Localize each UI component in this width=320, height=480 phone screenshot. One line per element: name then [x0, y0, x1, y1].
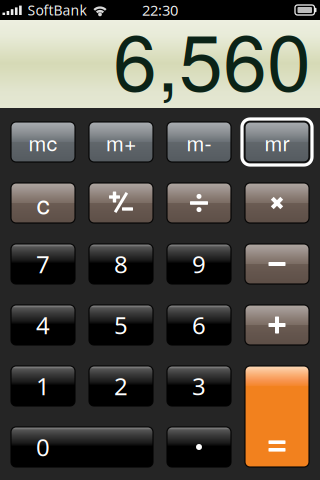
staticText: 6,560: [113, 1, 311, 114]
button[interactable]: 5: [89, 305, 153, 345]
button[interactable]: 4: [11, 305, 75, 345]
button[interactable]: 7: [11, 244, 75, 284]
button[interactable]: divide: [167, 183, 231, 223]
staticText: 4: [36, 309, 50, 341]
button[interactable]: memory add: [89, 122, 153, 162]
staticText: m+: [106, 127, 136, 157]
button[interactable]: equals: [245, 366, 309, 467]
button[interactable]: memory recall: [245, 122, 309, 162]
staticText: 9: [192, 248, 206, 280]
button[interactable]: 8: [89, 244, 153, 284]
button[interactable]: 3: [167, 366, 231, 406]
button[interactable]: clear: [11, 183, 75, 223]
staticText: 2: [114, 370, 128, 402]
staticText: 7: [36, 248, 50, 280]
staticText: mr: [264, 127, 289, 157]
button[interactable]: 0: [11, 427, 153, 467]
button[interactable]: plus: [245, 305, 309, 345]
staticText: 22:30: [142, 0, 178, 20]
staticText: 6: [192, 309, 206, 341]
button[interactable]: memory subtract: [167, 122, 231, 162]
staticText: 3: [192, 370, 206, 402]
button[interactable]: 2: [89, 366, 153, 406]
button[interactable]: 9: [167, 244, 231, 284]
button[interactable]: memory clear: [11, 122, 75, 162]
button[interactable]: multiply: [245, 183, 309, 223]
staticText: mc: [28, 127, 57, 157]
staticText: m-: [186, 127, 211, 157]
button[interactable]: plus minus: [89, 183, 153, 223]
staticText: SoftBank: [27, 0, 86, 20]
staticText: c: [36, 184, 49, 222]
staticText: 0: [36, 431, 50, 463]
staticText: 5: [114, 309, 128, 341]
button[interactable]: decimal point: [167, 427, 231, 467]
button[interactable]: minus: [245, 244, 309, 284]
staticText: 8: [114, 248, 128, 280]
staticText: 1: [36, 370, 50, 402]
button[interactable]: 6: [167, 305, 231, 345]
button[interactable]: 1: [11, 366, 75, 406]
